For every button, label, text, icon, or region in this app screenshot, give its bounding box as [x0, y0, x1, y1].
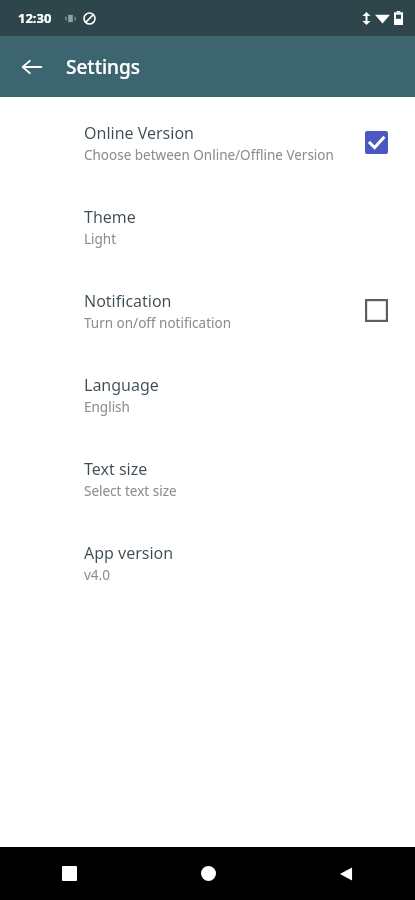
button[interactable]: Notification: [0, 287, 415, 371]
button[interactable]: Online Version: [0, 119, 415, 203]
staticText: Select text size: [84, 482, 177, 500]
button[interactable]: Back: [277, 847, 415, 900]
button[interactable]: Language: [0, 371, 415, 455]
staticText: 12:30: [18, 9, 52, 27]
staticText: Language: [84, 374, 159, 396]
button[interactable]: Home: [139, 847, 277, 900]
staticText: Turn on/off notification: [84, 314, 232, 332]
button[interactable]: Text size: [0, 455, 415, 539]
button[interactable]: Online Version: [359, 125, 393, 159]
staticText: Choose between Online/Offline Version: [84, 146, 334, 164]
button[interactable]: App version: [0, 539, 415, 623]
staticText: Theme: [84, 206, 136, 228]
staticText: App version: [84, 542, 174, 564]
staticText: Notification: [84, 290, 172, 312]
button[interactable]: Theme: [0, 203, 415, 287]
staticText: Light: [84, 230, 117, 248]
staticText: English: [84, 398, 130, 416]
staticText: Text size: [84, 458, 148, 480]
button[interactable]: Notification: [359, 293, 393, 327]
staticText: v4.0: [84, 566, 110, 584]
staticText: Settings: [66, 54, 140, 80]
staticText: Online Version: [84, 122, 194, 144]
button[interactable]: Back: [10, 45, 54, 89]
button[interactable]: Recent apps: [0, 847, 139, 900]
